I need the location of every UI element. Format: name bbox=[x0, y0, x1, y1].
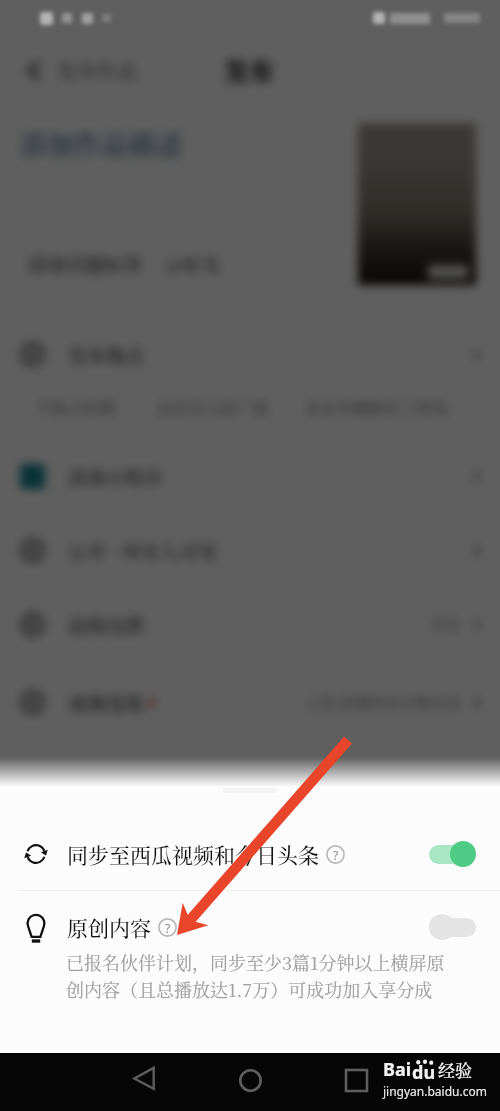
staticText: jingyan.baidu.com bbox=[383, 1083, 487, 1099]
staticText: @好友 bbox=[165, 250, 221, 277]
button[interactable]: Switch off bbox=[429, 913, 476, 941]
staticText: ? bbox=[333, 847, 339, 863]
staticText: 高级设置 bbox=[68, 611, 145, 638]
staticText: 添加小程序 bbox=[68, 463, 164, 490]
staticText: 公开 · 所有人可见 bbox=[68, 537, 217, 564]
button[interactable]: 原创内容 bbox=[0, 896, 500, 1012]
staticText: 已报名伙伴计划，同步至少3篇1分钟以上横屏原创内容（且总播放达1.7万）可成功加… bbox=[66, 949, 450, 1003]
staticText: 北京市朝阳区三里屯 bbox=[304, 396, 449, 419]
staticText: 添加作品描述 bbox=[20, 124, 182, 163]
button[interactable]: Switch on bbox=[429, 840, 476, 868]
staticText: 不显示位置 bbox=[35, 396, 116, 419]
staticText: 同步至西瓜视频和今日头条 bbox=[67, 839, 319, 869]
staticText: ? bbox=[165, 920, 171, 936]
staticText: 发布地点 bbox=[68, 341, 145, 368]
staticText: 发布 bbox=[224, 52, 275, 88]
button[interactable]: Home bbox=[227, 1057, 273, 1103]
staticText: 发布作品 bbox=[57, 56, 137, 85]
staticText: Bai bbox=[383, 1057, 412, 1082]
staticText: 原创内容 bbox=[67, 912, 151, 942]
staticText: du bbox=[412, 1060, 436, 1082]
button[interactable]: Back bbox=[121, 1055, 167, 1101]
button[interactable]: 同步至西瓜视频和今日头条 bbox=[0, 822, 500, 886]
staticText: 经验 bbox=[438, 1057, 472, 1081]
staticText: 添加话题标签 bbox=[28, 250, 143, 277]
button[interactable]: Recent apps bbox=[333, 1057, 379, 1103]
staticText: 视频选集 bbox=[68, 689, 145, 716]
staticText: 上传/创建你的合集作品 bbox=[305, 691, 461, 713]
